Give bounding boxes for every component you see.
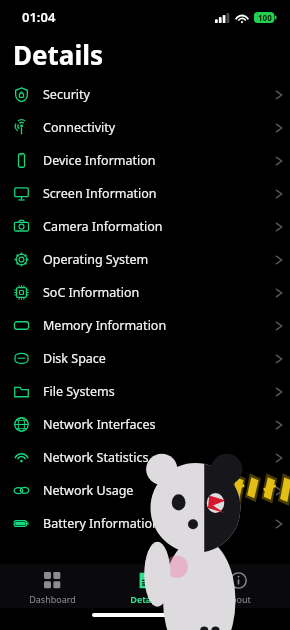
staticText: Operating System [43, 251, 269, 268]
staticText: SoC Information [43, 284, 269, 301]
button[interactable]: Network Usage [0, 474, 290, 507]
button[interactable]: Disk Space [0, 342, 290, 375]
button[interactable]: File Systems [0, 375, 290, 408]
button[interactable]: Screen Information [0, 177, 290, 210]
staticText: Network Statistics [43, 449, 269, 466]
staticText: Security [43, 86, 269, 103]
staticText: File Systems [43, 383, 269, 400]
staticText: Details [130, 593, 161, 605]
staticText: Network Interfaces [43, 416, 269, 433]
button[interactable]: Dashboard [11, 564, 93, 608]
staticText: Device Information [43, 152, 269, 169]
button[interactable]: Security [0, 78, 290, 111]
staticText: Connectivity [43, 119, 269, 136]
button[interactable]: Camera Information [0, 210, 290, 243]
button[interactable]: Battery Information [0, 507, 290, 540]
staticText: Camera Information [43, 218, 269, 235]
button[interactable]: Operating System [0, 243, 290, 276]
staticText: About [225, 593, 251, 605]
button[interactable]: Memory Information [0, 309, 290, 342]
staticText: Memory Information [43, 317, 269, 334]
button[interactable]: SoC Information [0, 276, 290, 309]
staticText: Network Usage [43, 482, 269, 499]
button[interactable]: Device Information [0, 144, 290, 177]
button[interactable]: Network Statistics [0, 441, 290, 474]
staticText: 100 [258, 12, 272, 23]
button[interactable]: About [197, 564, 279, 608]
button[interactable]: Details [104, 564, 186, 608]
staticText: Details [13, 37, 103, 72]
staticText: Battery Information [43, 515, 269, 532]
staticText: Dashboard [29, 593, 76, 605]
button[interactable]: Connectivity [0, 111, 290, 144]
staticText: Screen Information [43, 185, 269, 202]
button[interactable]: Network Interfaces [0, 408, 290, 441]
staticText: Disk Space [43, 350, 269, 367]
staticText: 01:04 [22, 8, 56, 26]
